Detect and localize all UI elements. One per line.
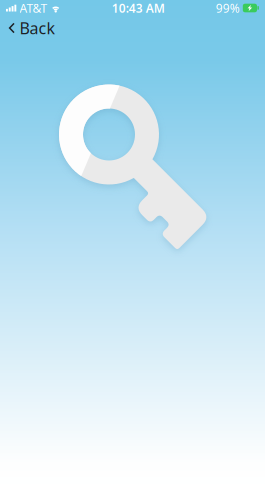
staticText: AT&T bbox=[19, 0, 47, 16]
staticText: 10:43 AM bbox=[112, 0, 165, 16]
button[interactable]: Back bbox=[0, 12, 66, 44]
staticText: 99% bbox=[216, 0, 240, 16]
staticText: Back bbox=[20, 17, 56, 39]
